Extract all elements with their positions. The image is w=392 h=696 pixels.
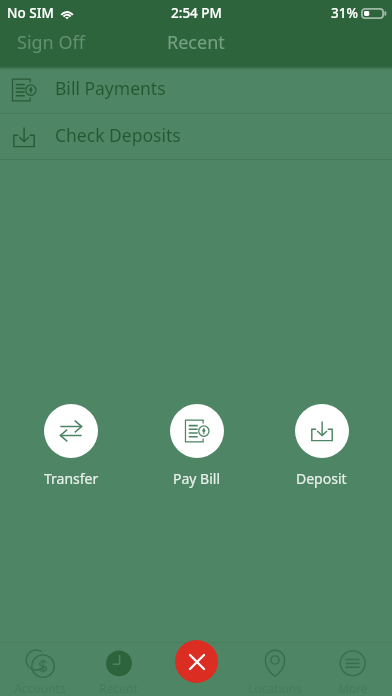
- button[interactable]: More: [314, 648, 392, 696]
- staticText: Bill Payments: [55, 76, 166, 100]
- button[interactable]: Sign Off: [0, 25, 99, 60]
- button[interactable]: Recent: [153, 25, 239, 60]
- button[interactable]: Pay Bill: [134, 404, 259, 488]
- staticText: Sign Off: [17, 30, 85, 55]
- staticText: Recent: [167, 30, 225, 55]
- staticText: Pay Bill: [173, 469, 221, 488]
- staticText: 31%: [331, 4, 358, 22]
- button[interactable]: Close menu: [175, 640, 218, 683]
- button[interactable]: Bill Payments: [0, 67, 392, 113]
- button[interactable]: Locations: [236, 648, 314, 696]
- staticText: More: [338, 680, 368, 696]
- button[interactable]: Check Deposits: [0, 114, 392, 159]
- staticText: No SIM: [7, 4, 54, 22]
- button[interactable]: Deposit: [259, 404, 384, 488]
- staticText: Check Deposits: [55, 123, 181, 147]
- button[interactable]: Transfer: [8, 404, 134, 488]
- staticText: Deposit: [296, 469, 347, 488]
- staticText: Transfer: [44, 469, 99, 488]
- button[interactable]: Recent: [79, 648, 158, 696]
- staticText: 2:54 PM: [171, 4, 222, 22]
- button[interactable]: Accounts: [0, 648, 79, 696]
